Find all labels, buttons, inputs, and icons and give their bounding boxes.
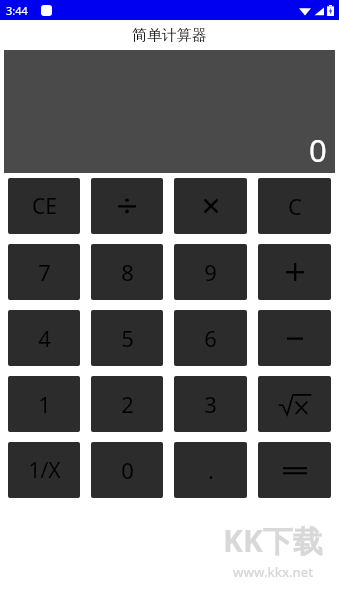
button[interactable]: 4	[8, 310, 80, 366]
button[interactable]: .	[174, 442, 247, 498]
staticText: 2	[121, 389, 134, 419]
button[interactable]: CE	[8, 178, 80, 234]
button[interactable]: Minus	[258, 310, 331, 366]
staticText: www.kkx.net	[233, 563, 314, 581]
staticText: 简单计算器	[132, 26, 207, 45]
button[interactable]: 8	[91, 244, 163, 300]
button[interactable]: 3	[174, 376, 247, 432]
staticText: .	[208, 455, 214, 485]
staticText: 0	[309, 129, 327, 171]
staticText: 3	[204, 389, 217, 419]
staticText: 1	[38, 389, 51, 419]
button[interactable]: 7	[8, 244, 80, 300]
button[interactable]: Multiply	[174, 178, 247, 234]
button[interactable]: Square root	[258, 376, 331, 432]
button[interactable]: 9	[174, 244, 247, 300]
button[interactable]: 6	[174, 310, 247, 366]
staticText: 3:44	[6, 3, 28, 18]
button[interactable]: 5	[91, 310, 163, 366]
button[interactable]: Equals	[258, 442, 331, 498]
button[interactable]: Divide	[91, 178, 163, 234]
button[interactable]: 0	[91, 442, 163, 498]
button[interactable]: Plus	[258, 244, 331, 300]
staticText: 7	[38, 257, 51, 287]
button[interactable]: 1/X	[8, 442, 80, 498]
staticText: 5	[121, 323, 134, 353]
staticText: 6	[204, 323, 217, 353]
staticText: 9	[204, 257, 217, 287]
button[interactable]: 2	[91, 376, 163, 432]
staticText: C	[288, 191, 302, 221]
staticText: 4	[38, 323, 51, 353]
staticText: CE	[32, 192, 57, 221]
button[interactable]: 1	[8, 376, 80, 432]
staticText: 8	[121, 257, 134, 287]
staticText: 1/X	[28, 456, 61, 485]
staticText: 0	[121, 455, 134, 485]
button[interactable]: C	[258, 178, 331, 234]
staticText: KK下载	[223, 520, 323, 561]
